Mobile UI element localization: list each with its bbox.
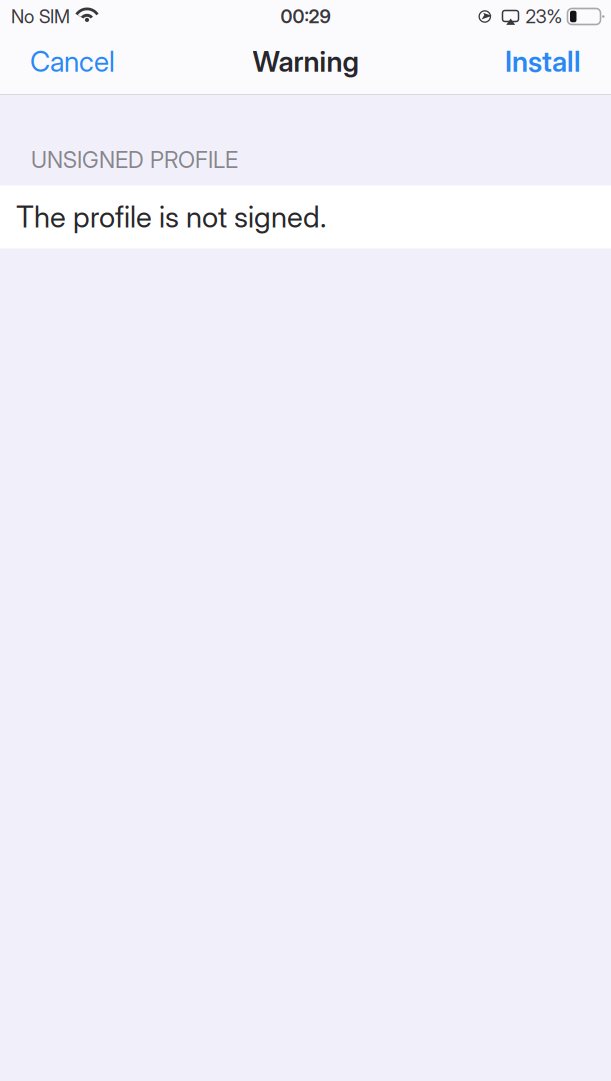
staticText: No SIM [11,5,70,28]
staticText: UNSIGNED PROFILE [31,146,238,173]
button[interactable]: The profile is not signed. [0,185,611,248]
staticText: 00:29 [280,5,330,28]
staticText: 23% [525,5,562,28]
staticText: Warning [252,45,358,78]
button[interactable]: Cancel [0,34,129,92]
button[interactable]: Install [491,34,611,92]
staticText: Install [505,45,581,78]
staticText: Cancel [30,45,115,78]
staticText: The profile is not signed. [16,199,326,235]
